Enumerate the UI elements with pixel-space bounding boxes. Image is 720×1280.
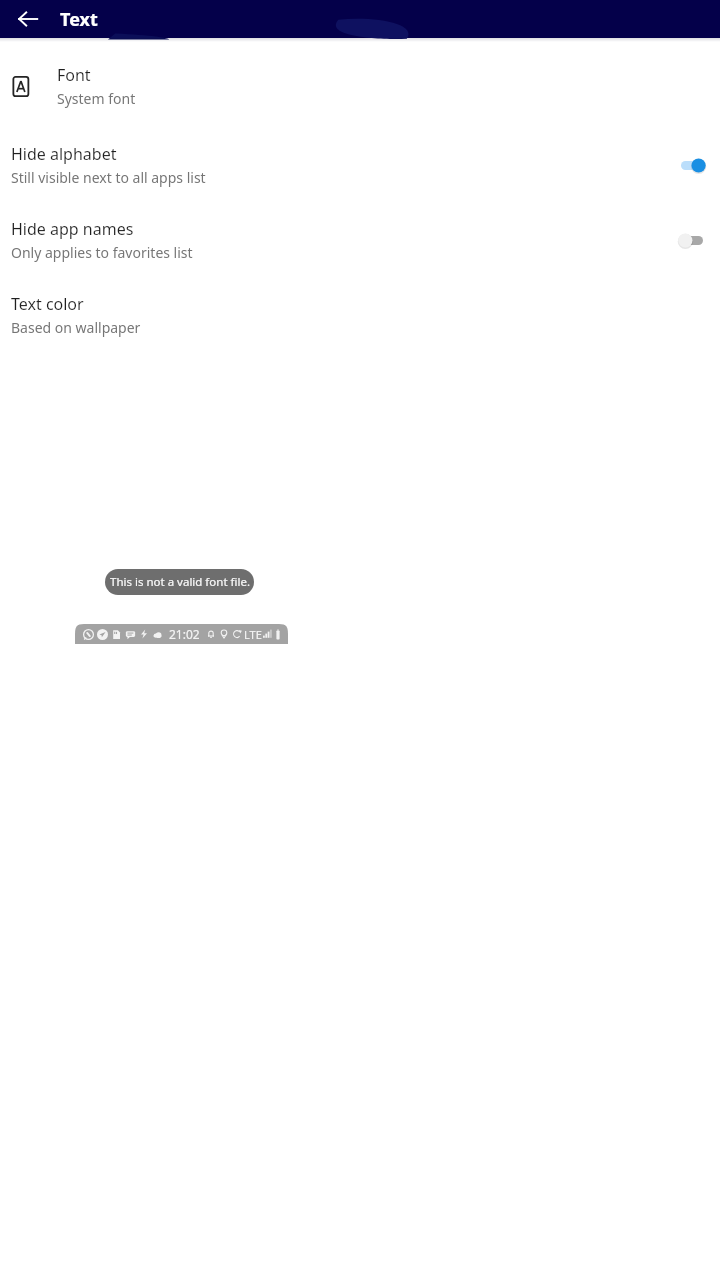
button[interactable]: Text color [0, 291, 720, 339]
staticText: Hide app names [11, 218, 134, 240]
staticText: Based on wallpaper [11, 318, 141, 337]
staticText: Hide alphabet [11, 143, 117, 165]
button[interactable]: Font [0, 60, 720, 112]
staticText: This is not a valid font file. [110, 574, 250, 590]
staticText: 21:02 [169, 626, 200, 642]
staticText: Only applies to favorites list [11, 243, 193, 262]
staticText: LTE [244, 627, 262, 642]
staticText: Font [57, 64, 91, 86]
staticText: Text color [11, 293, 84, 315]
staticText: Text [60, 7, 98, 32]
staticText: System font [57, 89, 136, 108]
staticText: Still visible next to all apps list [11, 168, 206, 187]
button[interactable]: Off [678, 230, 706, 251]
button[interactable]: Hide app names [0, 216, 720, 264]
button[interactable]: On [678, 155, 706, 176]
button[interactable]: Hide alphabet [0, 141, 720, 189]
button[interactable]: Back [10, 1, 46, 37]
